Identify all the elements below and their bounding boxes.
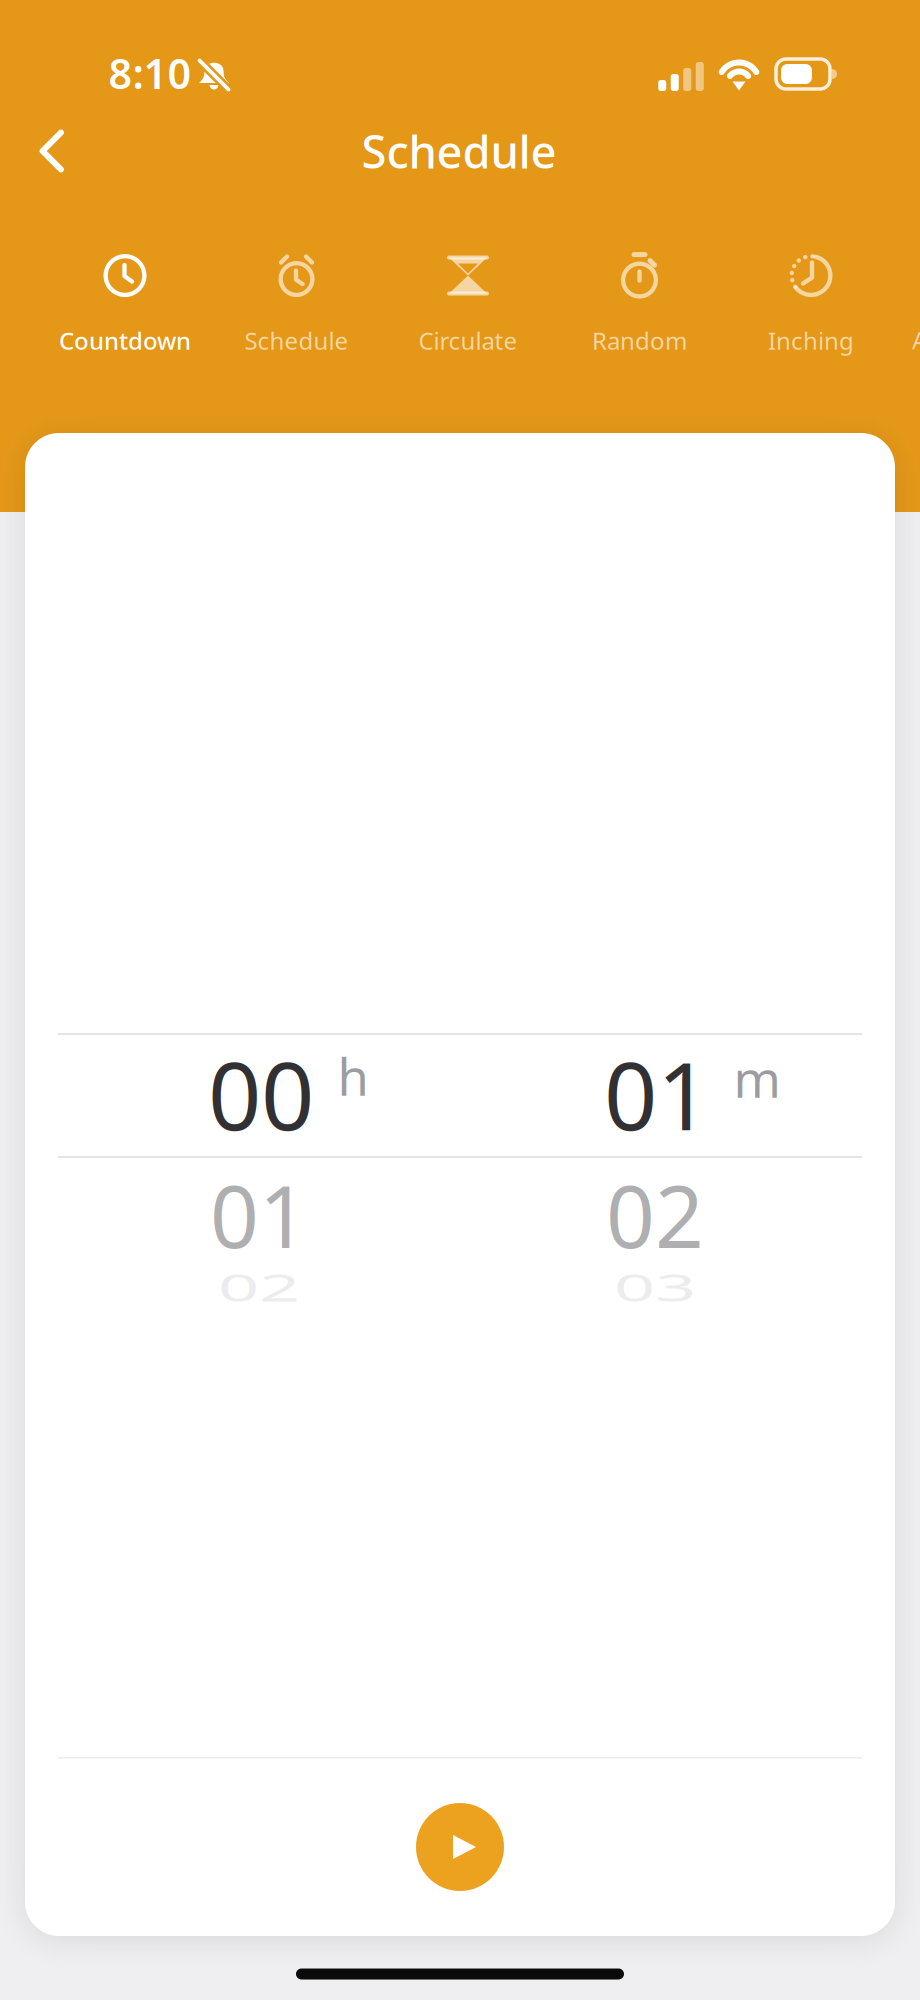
staticText: 01 <box>604 1032 710 1156</box>
button[interactable]: Inching <box>758 242 864 364</box>
button[interactable]: Countdown <box>49 242 201 364</box>
button[interactable]: Alarm <box>902 316 920 364</box>
button[interactable]: Schedule <box>234 242 358 364</box>
staticText: Random <box>592 325 687 356</box>
staticText: 8:10 <box>108 46 191 100</box>
staticText: 01 <box>210 1158 308 1272</box>
staticText: Schedule <box>361 121 556 181</box>
staticText: Circulate <box>418 325 517 356</box>
button[interactable]: Back <box>13 105 94 196</box>
staticText: 03 <box>614 1239 696 1335</box>
staticText: Countdown <box>59 325 191 356</box>
button[interactable]: Random <box>582 242 697 364</box>
staticText: Schedule <box>244 325 348 356</box>
staticText: 02 <box>218 1239 300 1335</box>
staticText: Inching <box>768 325 854 356</box>
button[interactable]: Start timer <box>396 1783 524 1911</box>
staticText: 00 <box>208 1032 314 1156</box>
staticText: 02 <box>606 1158 704 1272</box>
staticText: Alarm <box>912 324 920 356</box>
button[interactable]: Circulate <box>408 242 527 364</box>
staticText: m <box>733 1044 780 1112</box>
staticText: h <box>337 1042 368 1110</box>
